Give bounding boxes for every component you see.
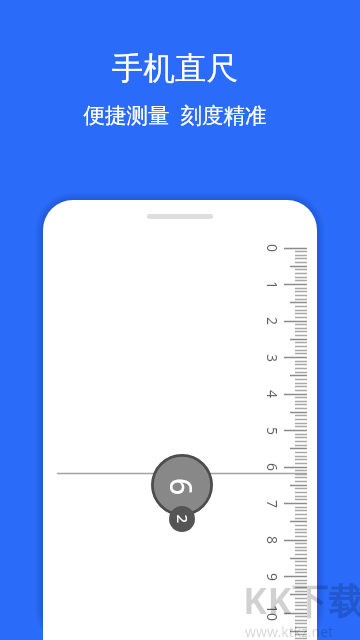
staticText: 4 bbox=[263, 390, 282, 399]
staticText: 手机直尺 bbox=[112, 49, 238, 89]
button[interactable]: Measurement handle 6 bbox=[151, 454, 213, 516]
staticText: 7 bbox=[263, 500, 282, 509]
staticText: 9 bbox=[263, 573, 282, 582]
staticText: 6 bbox=[263, 463, 282, 472]
staticText: 3 bbox=[263, 354, 282, 363]
staticText: 0 bbox=[263, 244, 282, 253]
staticText: www.ktkz.net bbox=[245, 622, 334, 640]
button[interactable]: Secondary measurement 2 bbox=[169, 506, 195, 532]
staticText: 2 bbox=[263, 317, 282, 326]
staticText: 1 bbox=[263, 281, 282, 290]
staticText: 2 bbox=[172, 514, 192, 523]
staticText: 8 bbox=[263, 536, 282, 545]
staticText: 6 bbox=[162, 478, 202, 496]
staticText: KK下载 bbox=[243, 576, 360, 625]
staticText: 5 bbox=[263, 427, 282, 436]
staticText: 便捷测量 刻度精准 bbox=[83, 100, 267, 129]
staticText: 10 bbox=[263, 605, 282, 622]
